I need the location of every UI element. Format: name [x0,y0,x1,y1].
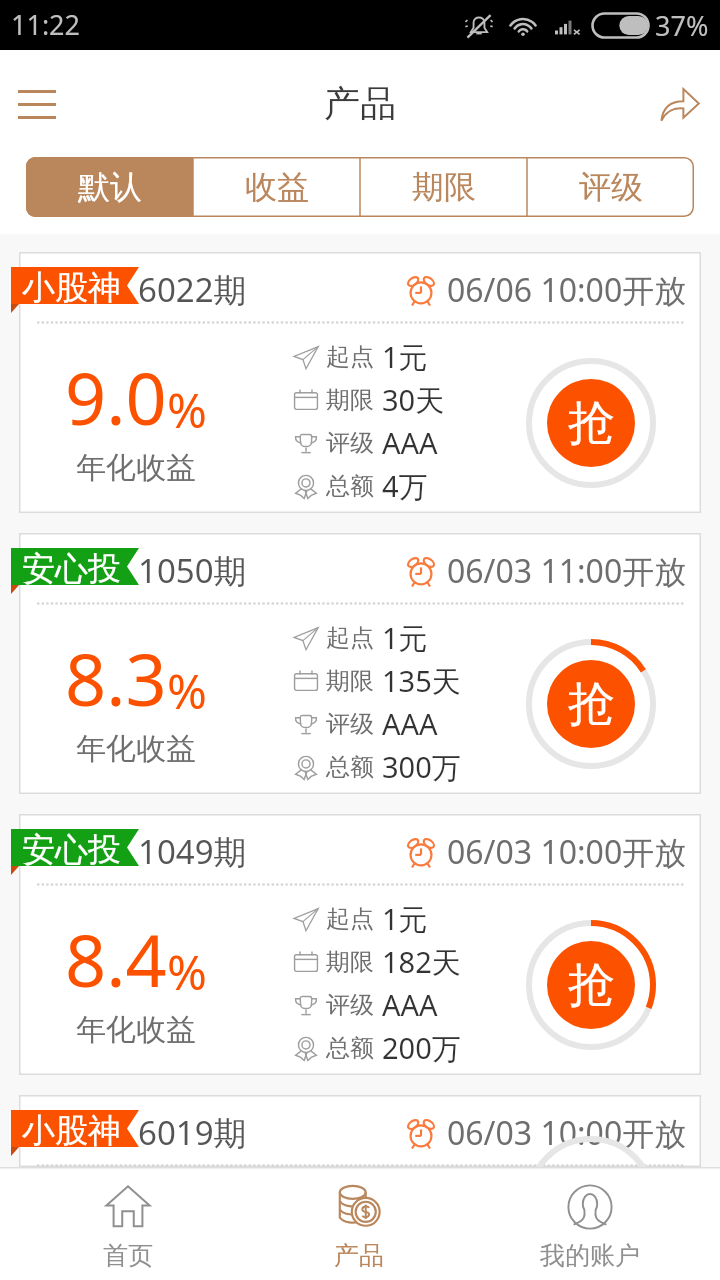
staticText: 首页 [103,1240,153,1271]
staticText: 1元 [382,618,428,658]
button[interactable] [19,252,701,513]
staticText: 我的账户 [540,1240,640,1271]
staticText: 抢 [568,394,615,453]
staticText: 起点 [326,904,374,934]
button[interactable]: 我的账户 [474,1167,705,1280]
staticText: 182天 [382,942,461,982]
staticText: 6019期 [138,1110,247,1155]
staticText: AAA [382,704,438,743]
staticText: 8.4 [65,910,167,1008]
staticText: 总额 [326,752,374,782]
staticText: 安心投 [22,829,121,871]
staticText: 总额 [326,1033,374,1063]
staticText: 期限 [326,947,374,977]
button[interactable]: Share [646,71,712,137]
staticText: 产品 [324,81,396,126]
staticText: 期限 [412,167,476,207]
staticText: 06/03 10:00开放 [447,830,687,874]
staticText: 期限 [326,666,374,696]
staticText: 起点 [326,623,374,653]
button[interactable] [19,533,701,794]
staticText: 06/03 11:00开放 [447,549,687,593]
staticText: % [167,377,207,442]
staticText: 评级 [326,990,374,1020]
staticText: 年化收益 [76,1011,196,1049]
staticText: 300万 [382,747,461,787]
staticText: 06/06 10:00开放 [447,268,687,312]
button[interactable]: 抢购 [526,358,656,488]
staticText: 收益 [245,167,309,207]
staticText: 11:22 [11,6,81,43]
staticText: 小股神 [22,1110,121,1152]
button[interactable]: 收益 [193,157,360,217]
staticText: 4万 [382,466,428,506]
staticText: 年化收益 [76,730,196,768]
staticText: 安心投 [22,548,121,590]
button[interactable]: 评级 [527,157,694,217]
button[interactable]: 抢购 [526,639,656,769]
staticText: 30天 [382,380,445,420]
staticText: 9.0 [65,348,167,446]
staticText: 37% [655,7,709,44]
staticText: % [167,939,207,1004]
button[interactable]: 产品 [243,1167,474,1280]
button[interactable]: 抢购 [526,920,656,1050]
staticText: 默认 [78,167,142,207]
button[interactable]: 默认 [26,157,193,217]
staticText: 起点 [326,342,374,372]
button[interactable]: 首页 [13,1167,243,1280]
staticText: 1元 [382,337,428,377]
staticText: 年化收益 [76,449,196,487]
staticText: AAA [382,985,438,1024]
button[interactable] [19,814,701,1075]
button[interactable]: Menu [4,71,70,137]
staticText: 小股神 [22,267,121,309]
staticText: 期限 [326,385,374,415]
staticText: 06/03 10:00开放 [447,1111,687,1155]
staticText: 135天 [382,661,461,701]
staticText: 8.3 [65,629,167,727]
staticText: 6022期 [138,267,247,312]
staticText: 1050期 [138,548,247,593]
staticText: 200万 [382,1028,461,1068]
staticText: 抢 [568,956,615,1015]
staticText: 评级 [579,167,643,207]
staticText: 评级 [326,709,374,739]
staticText: 抢 [568,675,615,734]
button[interactable]: 期限 [360,157,527,217]
staticText: AAA [382,423,438,462]
staticText: 总额 [326,471,374,501]
staticText: 评级 [326,428,374,458]
staticText: % [167,658,207,723]
button[interactable] [19,1095,701,1167]
staticText: 1元 [382,899,428,939]
staticText: 1049期 [138,829,247,874]
staticText: 产品 [334,1240,384,1271]
